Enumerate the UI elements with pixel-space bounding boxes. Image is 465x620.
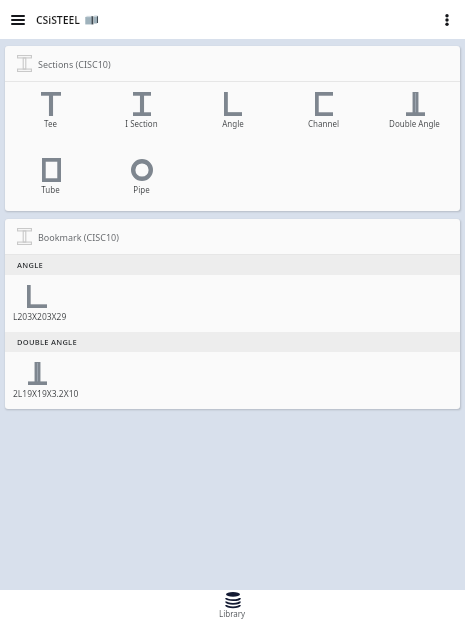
staticText: Library (219, 608, 246, 619)
button[interactable]: Tee (5, 92, 96, 129)
button[interactable]: More options (429, 2, 465, 38)
staticText: ANGLE (17, 260, 43, 270)
button[interactable]: 2L19X19X3.2X10 (5, 352, 460, 409)
button[interactable]: Angle (187, 92, 278, 129)
staticText: Bookmark (CISC10) (38, 231, 119, 243)
button[interactable]: Navigation menu (0, 2, 36, 38)
staticText: Sections (CISC10) (38, 58, 111, 70)
staticText: L203X203X29 (13, 311, 67, 323)
button[interactable]: Channel (278, 92, 369, 129)
staticText: Double Angle (389, 118, 440, 129)
button[interactable]: Pipe (96, 158, 187, 195)
button[interactable]: I Section (96, 92, 187, 129)
staticText: 2L19X19X3.2X10 (13, 388, 79, 400)
button[interactable]: L203X203X29 (5, 275, 460, 332)
staticText: Angle (222, 118, 244, 129)
button[interactable]: Library (205, 592, 260, 619)
button[interactable]: Double Angle (369, 92, 460, 129)
staticText: DOUBLE ANGLE (17, 337, 77, 347)
staticText: Channel (308, 118, 339, 129)
staticText: CSiSTEEL (36, 13, 80, 27)
staticText: Pipe (133, 184, 150, 195)
staticText: Tube (41, 184, 60, 195)
staticText: Tee (44, 118, 57, 129)
staticText: I Section (125, 118, 158, 129)
button[interactable]: Tube (5, 158, 96, 195)
